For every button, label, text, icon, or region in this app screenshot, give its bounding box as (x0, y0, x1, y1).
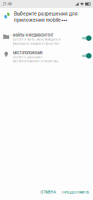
button[interactable]: Файлы и медиаконтент (1, 33, 92, 45)
button[interactable]: Местоположение (1, 50, 92, 63)
staticText: файлам на вашем устройстве (13, 42, 60, 45)
staticText: приложения mobile••• (14, 17, 67, 23)
button[interactable]: ПРОДОЛЖИТЬ (60, 189, 90, 196)
staticText: местоположении устройства (13, 59, 59, 63)
staticText: Файлы и медиаконтент (13, 33, 54, 37)
button[interactable]: ОТМЕНА (39, 189, 57, 196)
staticText: ОТМЕНА (41, 190, 56, 194)
staticText: доступ к данным о (13, 55, 43, 59)
staticText: ПРОДОЛЖИТЬ (62, 190, 89, 194)
staticText: доступ к фото, мультимедиа и (13, 38, 61, 41)
staticText: Местоположение (13, 50, 43, 55)
staticText: 21:48 (2, 2, 11, 6)
staticText: Выберите разрешения для (14, 11, 78, 17)
